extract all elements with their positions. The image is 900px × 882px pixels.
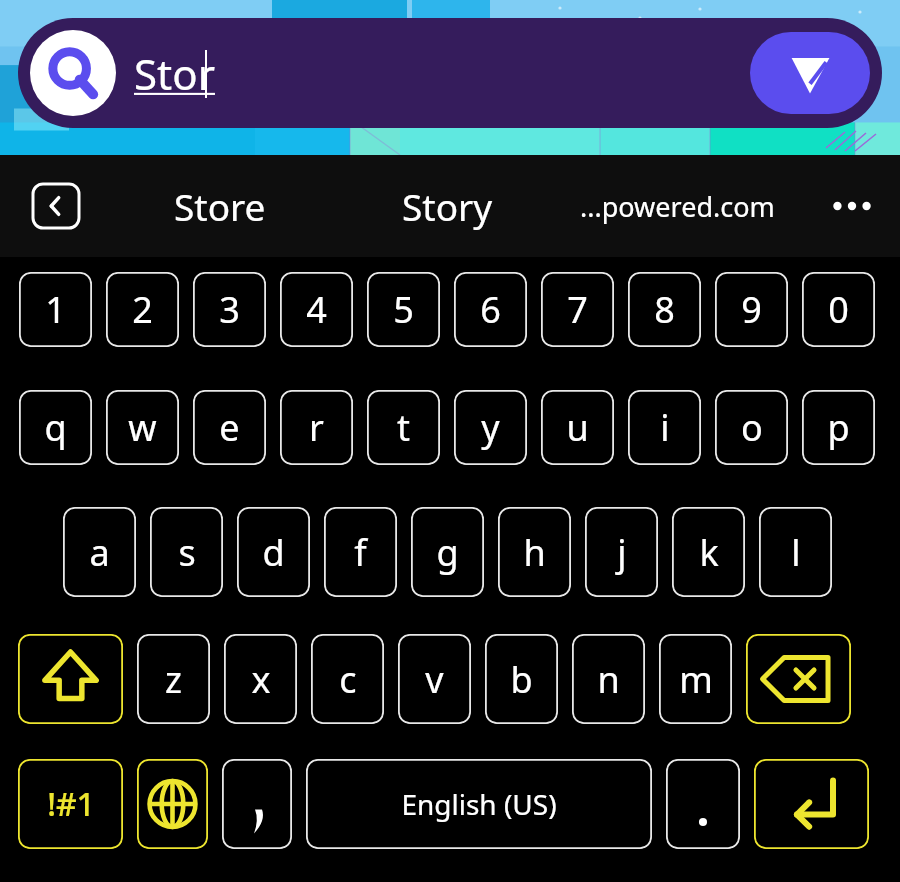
staticText: b xyxy=(510,655,533,704)
button[interactable]: Shift xyxy=(18,634,123,724)
button[interactable]: x xyxy=(224,634,297,724)
staticText: i xyxy=(660,403,670,452)
button[interactable]: 7 xyxy=(541,272,614,347)
button[interactable]: a xyxy=(63,507,136,597)
button[interactable]: v xyxy=(398,634,471,724)
staticText: 0 xyxy=(828,285,849,334)
button[interactable]: 1 xyxy=(19,272,92,347)
button[interactable]: 4 xyxy=(280,272,353,347)
staticText: c xyxy=(339,655,357,704)
staticText: n xyxy=(597,655,620,704)
button[interactable]: Period xyxy=(666,759,740,849)
staticText: 8 xyxy=(654,285,675,334)
button[interactable]: More options xyxy=(826,180,878,232)
button[interactable]: 3 xyxy=(193,272,266,347)
button[interactable]: Backspace xyxy=(746,634,851,724)
staticText: y xyxy=(481,403,500,452)
staticText: English (US) xyxy=(401,785,557,823)
button[interactable]: g xyxy=(411,507,484,597)
staticText: v xyxy=(425,655,444,704)
button[interactable]: n xyxy=(572,634,645,724)
button[interactable]: Store xyxy=(120,155,320,257)
button[interactable]: h xyxy=(498,507,571,597)
button[interactable]: o xyxy=(715,390,788,465)
staticText: x xyxy=(251,655,271,704)
staticText: r xyxy=(309,403,324,452)
button[interactable]: Comma xyxy=(222,759,292,849)
button[interactable]: r xyxy=(280,390,353,465)
button[interactable]: Change language xyxy=(137,759,208,849)
staticText: 3 xyxy=(219,285,240,334)
staticText: h xyxy=(523,528,546,577)
staticText: 4 xyxy=(306,285,327,334)
button[interactable]: w xyxy=(106,390,179,465)
staticText: e xyxy=(219,403,240,452)
button[interactable]: i xyxy=(628,390,701,465)
staticText: Store xyxy=(174,181,266,231)
button[interactable]: 0 xyxy=(802,272,875,347)
button[interactable]: Send xyxy=(750,32,870,114)
button[interactable]: English (US) xyxy=(306,759,652,849)
button[interactable]: y xyxy=(454,390,527,465)
button[interactable]: Story xyxy=(352,155,542,257)
button[interactable]: s xyxy=(150,507,223,597)
button[interactable]: m xyxy=(659,634,732,724)
staticText: 6 xyxy=(480,285,501,334)
staticText: l xyxy=(791,528,801,577)
staticText: s xyxy=(178,528,196,577)
staticText: q xyxy=(44,403,67,452)
staticText: 2 xyxy=(132,285,153,334)
button[interactable]: !#1 xyxy=(18,759,123,849)
staticText: 7 xyxy=(567,285,588,334)
staticText: p xyxy=(827,403,850,452)
staticText: Stor xyxy=(134,45,215,102)
staticText: Story xyxy=(402,181,493,231)
staticText: j xyxy=(617,528,627,577)
button[interactable]: p xyxy=(802,390,875,465)
staticText: 1 xyxy=(45,285,66,334)
button[interactable]: q xyxy=(19,390,92,465)
staticText: d xyxy=(262,528,285,577)
button[interactable]: 2 xyxy=(106,272,179,347)
staticText: g xyxy=(436,528,459,577)
button[interactable]: 8 xyxy=(628,272,701,347)
button[interactable]: Previous xyxy=(33,184,79,228)
button[interactable]: Enter xyxy=(754,759,869,849)
button[interactable]: f xyxy=(324,507,397,597)
staticText: a xyxy=(89,528,110,577)
button[interactable]: 5 xyxy=(367,272,440,347)
button[interactable]: d xyxy=(237,507,310,597)
button[interactable]: ...powered.com xyxy=(570,155,785,257)
button[interactable]: z xyxy=(137,634,210,724)
staticText: 9 xyxy=(741,285,762,334)
staticText: !#1 xyxy=(47,782,95,826)
staticText: o xyxy=(741,403,763,452)
staticText: u xyxy=(566,403,589,452)
staticText: m xyxy=(679,655,713,704)
button[interactable]: Search xyxy=(30,30,116,116)
button[interactable]: c xyxy=(311,634,384,724)
staticText: z xyxy=(165,655,182,704)
staticText: k xyxy=(699,528,719,577)
button[interactable]: j xyxy=(585,507,658,597)
staticText: f xyxy=(354,528,367,577)
staticText: ...powered.com xyxy=(580,188,775,225)
button[interactable]: Search xyxy=(18,18,882,128)
staticText: t xyxy=(397,403,410,452)
button[interactable]: k xyxy=(672,507,745,597)
button[interactable]: 6 xyxy=(454,272,527,347)
button[interactable]: e xyxy=(193,390,266,465)
button[interactable]: u xyxy=(541,390,614,465)
staticText: 5 xyxy=(393,285,414,334)
button[interactable]: l xyxy=(759,507,832,597)
button[interactable]: 9 xyxy=(715,272,788,347)
staticText: w xyxy=(128,403,157,452)
button[interactable]: t xyxy=(367,390,440,465)
button[interactable]: b xyxy=(485,634,558,724)
